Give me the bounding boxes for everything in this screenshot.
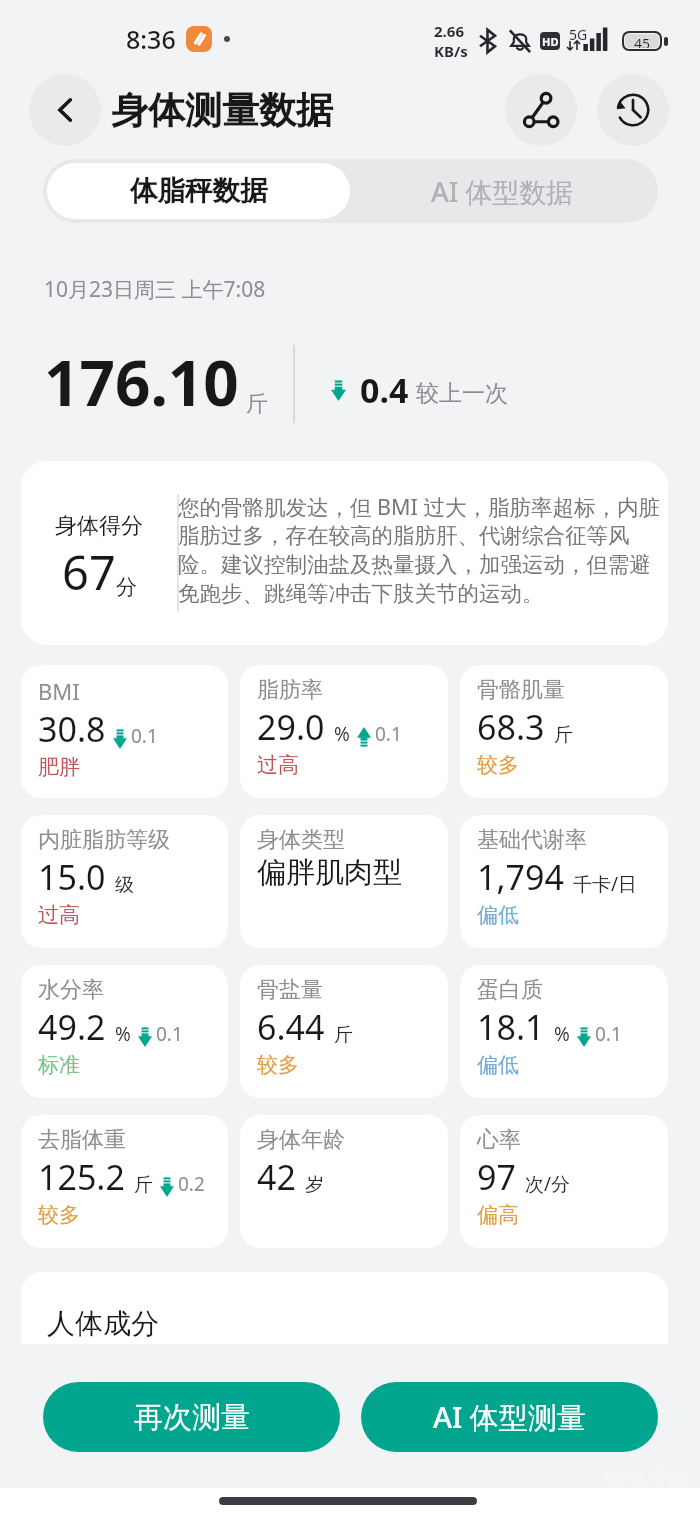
staticText: 过高 (257, 752, 299, 778)
staticText: 标准 (38, 1052, 80, 1078)
staticText: 0.1 (156, 1021, 183, 1047)
staticText: 30.8 (38, 706, 106, 752)
staticText: 偏低 (477, 1052, 519, 1078)
staticText: 斤 (334, 1023, 353, 1047)
staticText: 较多 (477, 752, 519, 778)
staticText: 125.2 (38, 1154, 125, 1200)
staticText: 0.1 (131, 723, 158, 749)
staticText: KB/s (434, 41, 468, 61)
button[interactable]: 蛋白质 (460, 965, 668, 1098)
staticText: 68.3 (477, 704, 545, 750)
staticText: 67 (62, 540, 116, 604)
staticText: 18.1 (477, 1004, 545, 1050)
staticText: 0.1 (595, 1021, 622, 1047)
button[interactable]: 脂肪率 (240, 665, 448, 798)
button[interactable]: Back (29, 74, 101, 146)
staticText: 肥胖 (38, 754, 80, 780)
staticText: 身体得分 (55, 512, 143, 540)
button[interactable]: 人体成分 (21, 1272, 668, 1344)
button[interactable]: 骨骼肌量 (460, 665, 668, 798)
staticText: 斤 (246, 390, 268, 418)
button[interactable]: 身体类型 (240, 815, 448, 948)
staticText: 岁 (305, 1173, 324, 1197)
staticText: 骨骼肌量 (477, 676, 565, 704)
button[interactable]: 内脏脂肪等级 (21, 815, 228, 948)
button[interactable]: History (597, 74, 669, 146)
staticText: 6.44 (257, 1004, 325, 1050)
staticText: 0.2 (178, 1171, 205, 1197)
button[interactable]: 去脂体重 (21, 1115, 228, 1248)
staticText: 再次测量 (134, 1399, 250, 1436)
button[interactable]: AI 体型测量 (361, 1382, 658, 1452)
staticText: 偏高 (477, 1202, 519, 1228)
staticText: 基础代谢率 (477, 826, 587, 854)
staticText: 45 (634, 34, 651, 48)
staticText: 49.2 (38, 1004, 106, 1050)
staticText: % (115, 1021, 131, 1047)
staticText: 人体成分 (47, 1306, 159, 1341)
staticText: 内脏脂肪等级 (38, 826, 170, 854)
staticText: 您的骨骼肌发达，但 BMI 过大，脂肪率超标，内脏脂肪过多，存在较高的脂肪肝、代… (178, 492, 668, 608)
button[interactable]: 骨盐量 (240, 965, 448, 1098)
staticText: 斤 (554, 723, 573, 747)
staticText: 15.0 (38, 854, 106, 900)
staticText: AI 体型测量 (433, 1397, 586, 1437)
staticText: 过高 (38, 902, 80, 928)
staticText: 8:36 (126, 22, 176, 56)
staticText: 蛋白质 (477, 976, 543, 1004)
staticText: 偏低 (477, 902, 519, 928)
staticText: 较多 (257, 1052, 299, 1078)
staticText: 较多 (38, 1202, 80, 1228)
button[interactable]: AI 体型数据 (350, 163, 654, 219)
staticText: 脂肪率 (257, 676, 323, 704)
staticText: AI 体型数据 (431, 173, 574, 210)
staticText: 较上一次 (416, 379, 508, 408)
button[interactable]: 基础代谢率 (460, 815, 668, 948)
staticText: % (554, 1021, 570, 1047)
staticText: 2.66 (434, 21, 464, 41)
button[interactable]: 水分率 (21, 965, 228, 1098)
staticText: 97 (477, 1154, 516, 1200)
staticText: 级 (115, 873, 134, 897)
staticText: 5G (569, 25, 588, 44)
staticText: 42 (257, 1154, 296, 1200)
staticText: 斤 (134, 1173, 153, 1197)
staticText: 29.0 (257, 704, 325, 750)
button[interactable]: 体脂秤数据 (47, 163, 350, 219)
staticText: 身体类型 (257, 826, 345, 854)
staticText: 次/分 (525, 1171, 571, 1197)
staticText: 10月23日周三 上午7:08 (44, 275, 266, 304)
staticText: 身体测量数据 (111, 87, 333, 134)
button[interactable]: 身体得分 (21, 461, 668, 645)
button[interactable]: BMI (21, 665, 228, 798)
staticText: 176.10 (44, 340, 239, 424)
staticText: 千卡/日 (573, 871, 638, 897)
staticText: 偏胖肌肉型 (257, 854, 402, 891)
staticText: 骨盐量 (257, 976, 323, 1004)
staticText: 分 (116, 574, 137, 600)
staticText: BMI (38, 676, 80, 706)
staticText: 家在 (600, 1464, 688, 1516)
staticText: 去脂体重 (38, 1126, 126, 1154)
staticText: 0.4 (360, 367, 409, 413)
button[interactable]: 心率 (460, 1115, 668, 1248)
staticText: 身体年龄 (257, 1126, 345, 1154)
staticText: 心率 (477, 1126, 521, 1154)
staticText: 1,794 (477, 854, 564, 900)
button[interactable]: Share (505, 74, 577, 146)
button[interactable]: 身体年龄 (240, 1115, 448, 1248)
staticText: HD (542, 34, 559, 49)
staticText: 0.1 (375, 721, 402, 747)
staticText: % (334, 721, 350, 747)
staticText: 水分率 (38, 976, 104, 1004)
staticText: 体脂秤数据 (130, 174, 268, 209)
button[interactable]: 再次测量 (43, 1382, 340, 1452)
